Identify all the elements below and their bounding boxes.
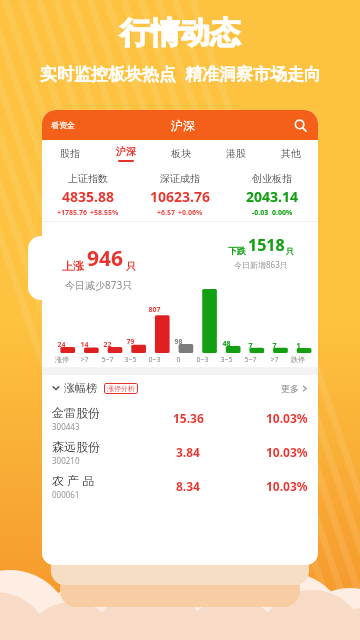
staticText: 股指 (60, 147, 80, 160)
button[interactable]: 看资金 (51, 120, 75, 130)
button[interactable]: Search (291, 116, 309, 134)
staticText: 上涨 (62, 259, 84, 273)
staticText: 农 产 品 (52, 472, 95, 488)
staticText: 7 (272, 341, 277, 351)
staticText: 0~3 (196, 355, 209, 365)
staticText: +0.06% (178, 208, 203, 218)
button[interactable]: 其他 (263, 140, 318, 167)
staticText: 10.03% (266, 444, 308, 460)
staticText: 1518 (248, 234, 285, 256)
button[interactable]: 农 产 品 (42, 469, 318, 503)
staticText: 创业板指 (252, 172, 292, 185)
staticText: 22 (103, 340, 112, 350)
staticText: 15.36 (173, 410, 204, 426)
button[interactable]: 港股 (208, 140, 263, 167)
staticText: 98 (174, 337, 183, 347)
staticText: 0~3 (148, 355, 161, 365)
staticText: 跌停 (291, 355, 305, 364)
staticText: 10.03% (266, 410, 308, 426)
staticText: 沪深 (171, 118, 195, 133)
staticText: 沪深 (116, 145, 136, 158)
staticText: 深证成指 (160, 172, 200, 185)
staticText: +58.55% (90, 208, 119, 218)
staticText: 946 (87, 244, 124, 273)
staticText: 只 (286, 246, 294, 256)
staticText: -0.03 (252, 208, 269, 218)
staticText: 实时监控板块热点 精准洞察市场走向 (40, 62, 321, 85)
staticText: 000061 (52, 489, 80, 500)
button[interactable]: 股指 (42, 140, 98, 167)
staticText: 5~7 (244, 355, 257, 365)
button[interactable]: 森远股份 (42, 435, 318, 469)
staticText: 更多 (281, 383, 299, 394)
staticText: +1785.76 (57, 208, 87, 218)
staticText: 3.84 (176, 444, 200, 460)
staticText: 板块 (171, 147, 191, 160)
button[interactable]: 涨停分析 (104, 383, 138, 394)
button[interactable]: 板块 (153, 140, 208, 167)
button[interactable]: 金雷股份 (42, 401, 318, 435)
staticText: 行情动态 (120, 14, 240, 52)
staticText: 今日减少873只 (65, 278, 133, 292)
button[interactable]: 涨幅榜 (42, 375, 318, 401)
staticText: 14 (80, 340, 89, 350)
button[interactable]: 上涨 (28, 236, 170, 300)
staticText: 3~5 (220, 355, 233, 365)
staticText: 5~7 (101, 355, 114, 365)
staticText: 10.03% (266, 478, 308, 494)
staticText: 10623.76 (150, 187, 210, 206)
staticText: 300443 (52, 421, 80, 432)
button[interactable]: 上证指数 (42, 172, 134, 218)
staticText: >7 (270, 355, 279, 365)
staticText: 7 (248, 341, 253, 351)
button[interactable]: 沪深 (98, 140, 153, 167)
staticText: 只 (126, 260, 136, 273)
button[interactable]: 深证成指 (134, 172, 226, 218)
staticText: 300210 (52, 455, 80, 466)
staticText: 金雷股份 (52, 405, 100, 420)
staticText: 48 (222, 339, 231, 349)
staticText: 8.34 (176, 478, 200, 494)
staticText: 港股 (226, 147, 246, 160)
staticText: 807 (148, 305, 161, 315)
staticText: 森远股份 (52, 439, 100, 454)
staticText: 79 (126, 337, 135, 347)
staticText: 1 (296, 341, 301, 351)
staticText: 24 (57, 340, 66, 350)
staticText: >7 (80, 355, 89, 365)
button[interactable]: 更多 (281, 383, 308, 394)
staticText: +6.57 (157, 208, 175, 218)
staticText: 下跌 (228, 245, 246, 256)
button[interactable]: 创业板指 (226, 172, 318, 218)
staticText: 其他 (281, 147, 301, 160)
staticText: 2043.14 (246, 187, 298, 206)
staticText: 涨停 (55, 355, 69, 364)
staticText: 上证指数 (68, 172, 108, 185)
staticText: 涨幅榜 (64, 381, 97, 395)
staticText: 今日新增863只 (234, 259, 288, 270)
staticText: 0.00% (272, 208, 293, 218)
staticText: 涨停分析 (107, 384, 135, 393)
staticText: 4835.88 (62, 187, 114, 206)
staticText: 0 (176, 355, 181, 365)
staticText: 3~5 (124, 355, 137, 365)
